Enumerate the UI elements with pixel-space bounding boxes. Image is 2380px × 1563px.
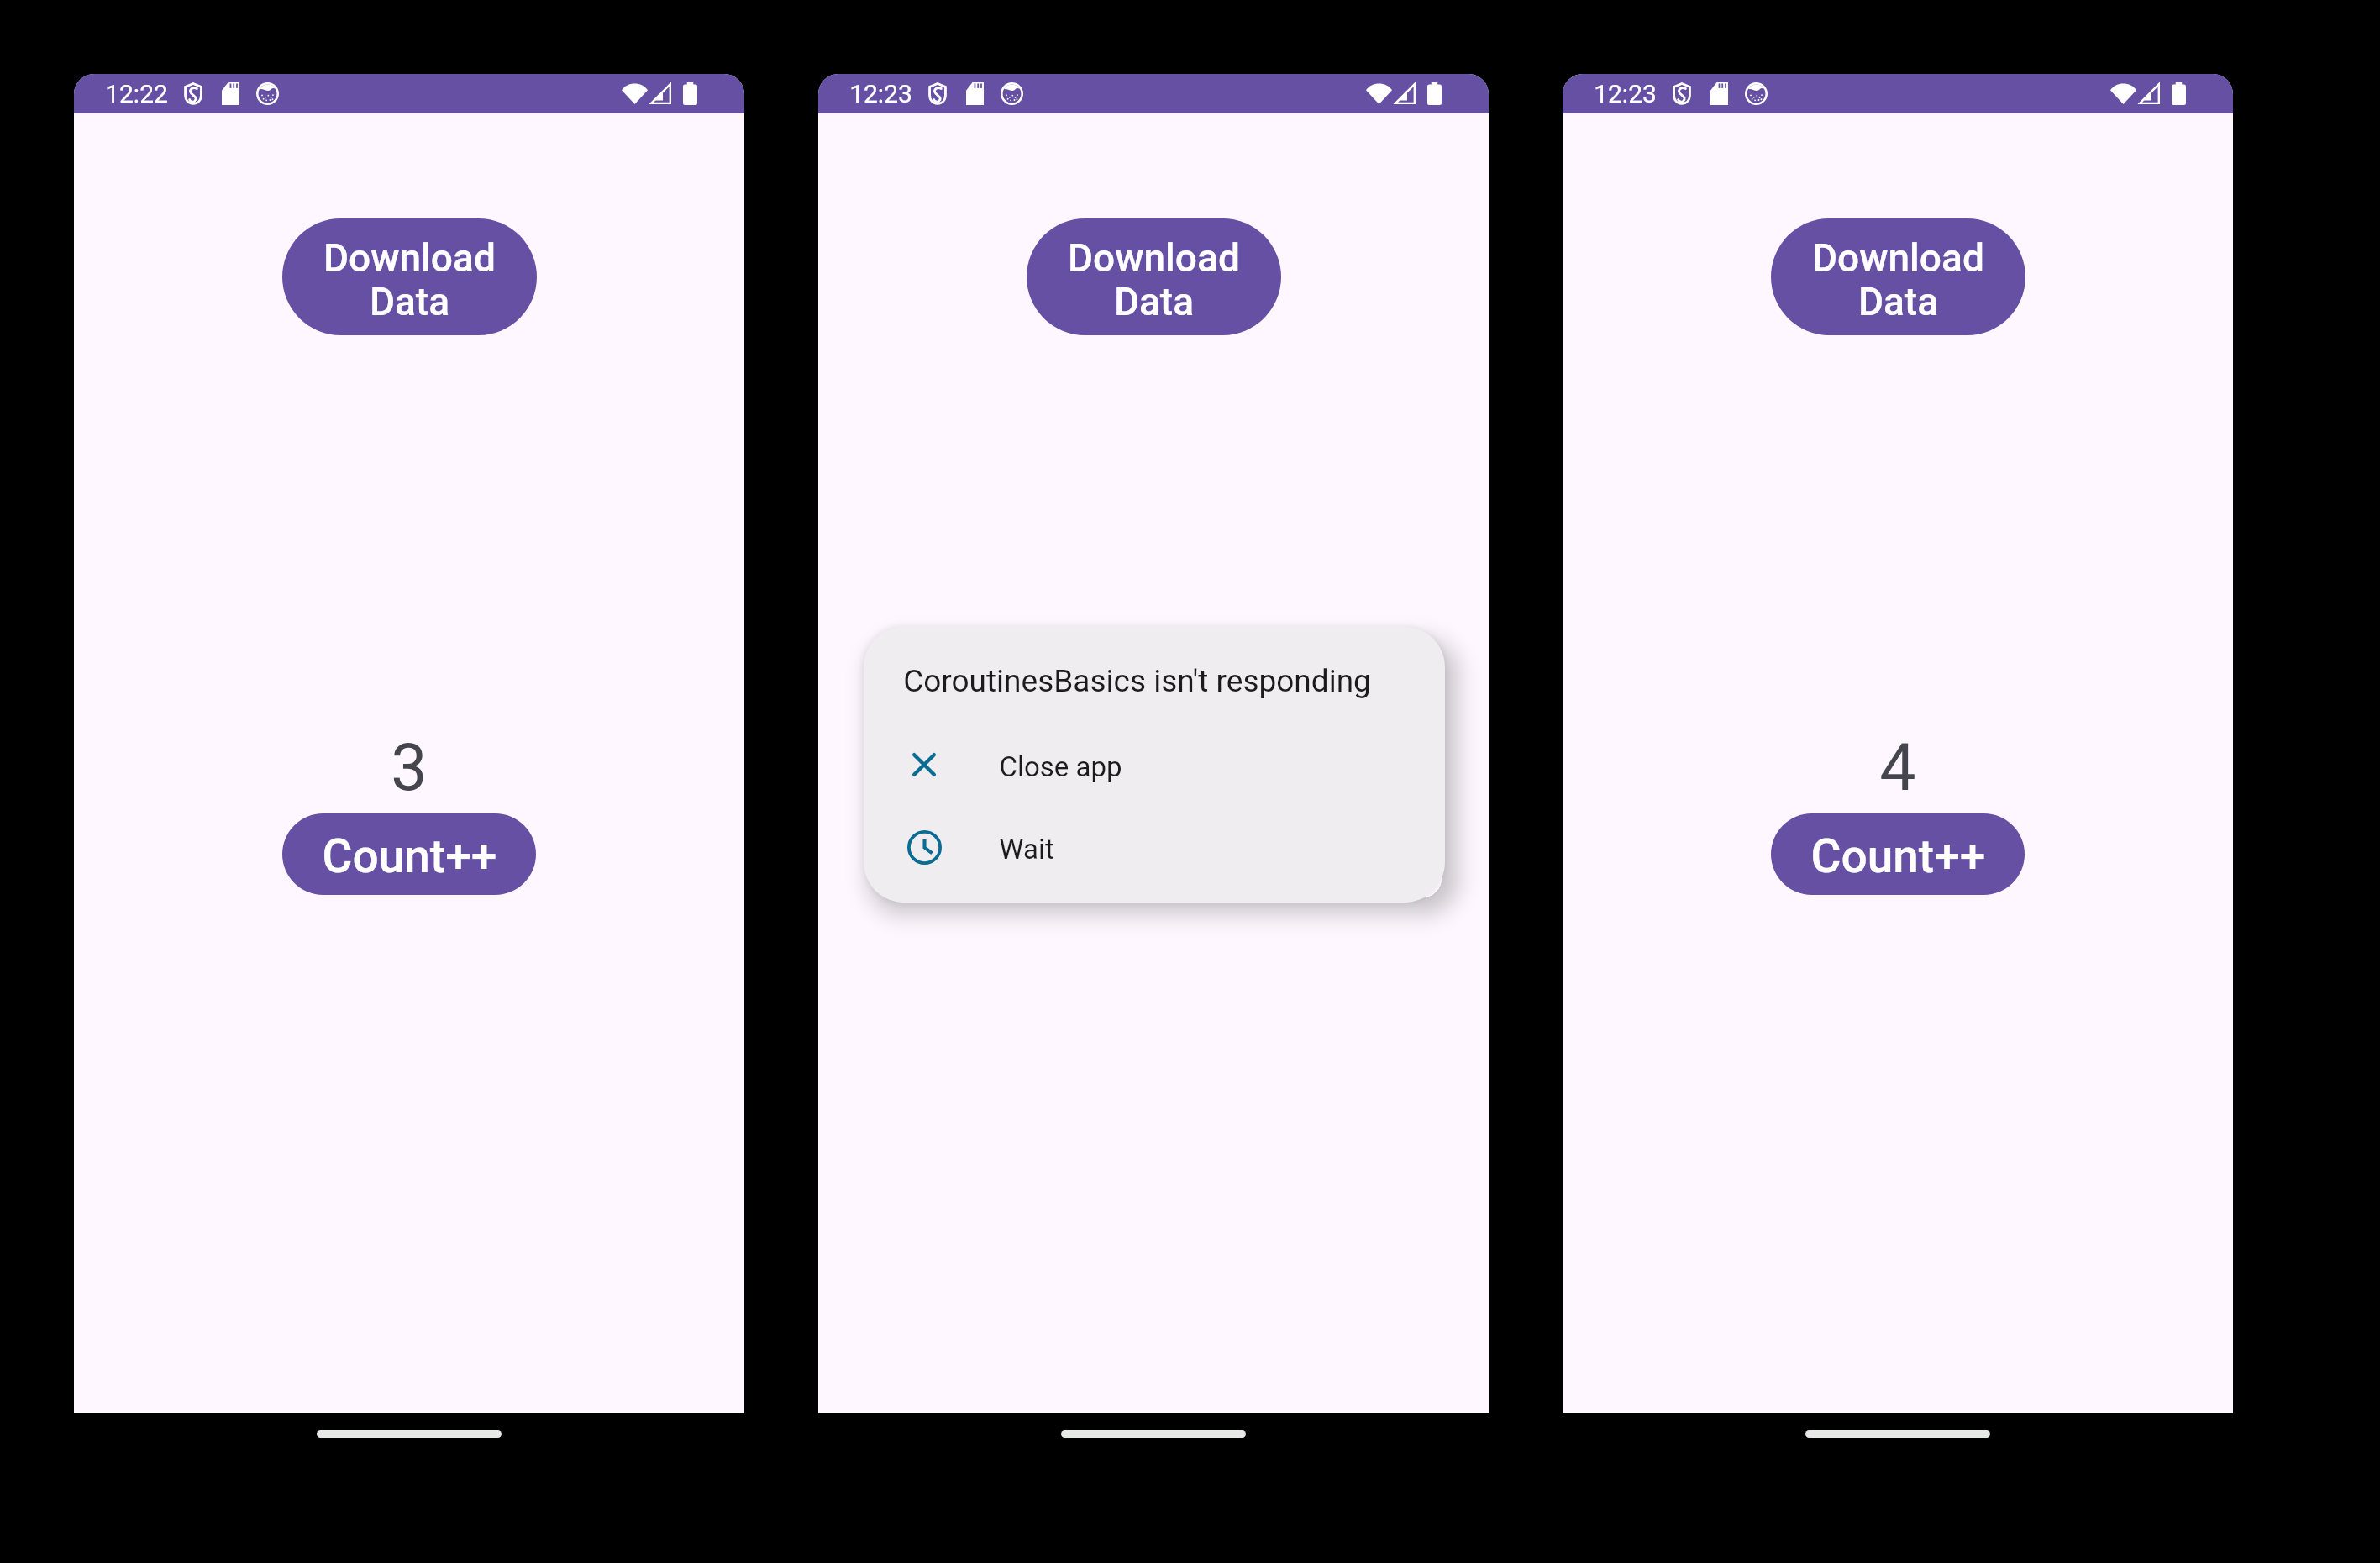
staticText: Count++ [322,829,497,883]
staticText: 4 [1879,730,1916,806]
staticText: 12:22 [105,79,168,108]
staticText: Count++ [1810,829,1986,883]
staticText: Download Data [1068,235,1240,324]
staticText: Download Data [1812,235,1984,324]
button[interactable]: Download Data [282,218,537,335]
staticText: Wait [999,833,1054,866]
button[interactable]: Download Data [1027,218,1281,335]
staticText: Download Data [323,235,496,324]
other: Close app [912,753,936,776]
button[interactable]: Wait [864,814,1445,863]
button[interactable]: Download Data [1771,218,2025,335]
button[interactable]: Count++ [1771,813,2025,895]
staticText: CoroutinesBasics isn't responding [903,663,1371,699]
staticText: 3 [391,730,428,806]
button[interactable]: Close app [864,731,1445,780]
other: Wait [907,830,942,865]
staticText: 12:23 [1594,79,1657,108]
staticText: 12:23 [849,79,912,108]
button[interactable]: Count++ [282,813,536,895]
staticText: Close app [999,750,1122,783]
